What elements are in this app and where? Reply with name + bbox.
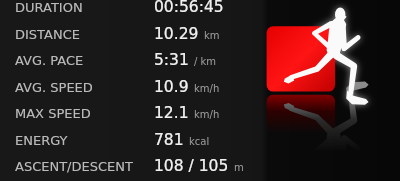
staticText: AVG. SPEED	[15, 80, 93, 95]
staticText: ENERGY	[15, 133, 68, 148]
button[interactable]: AVG. SPEED	[0, 72, 400, 99]
staticText: ASCENT/DESCENT	[15, 159, 133, 174]
button[interactable]: AVG. PACE	[0, 45, 400, 72]
staticText: 781	[154, 131, 184, 149]
other: Running activity logo	[0, 0, 400, 181]
staticText: 108 / 105	[154, 157, 229, 175]
staticText: DISTANCE	[15, 27, 80, 42]
staticText: 5:31	[154, 51, 189, 69]
staticText: km	[204, 30, 220, 42]
staticText: kcal	[189, 136, 210, 148]
staticText: 10.9	[154, 78, 189, 96]
staticText: 00:56:45	[154, 0, 224, 16]
staticText: / km	[194, 56, 217, 68]
staticText: km/h	[194, 83, 220, 95]
button[interactable]: ENERGY	[0, 125, 400, 152]
staticText: AVG. PACE	[15, 53, 84, 68]
button[interactable]: DURATION	[0, 0, 400, 19]
staticText: m	[234, 162, 244, 174]
staticText: DURATION	[15, 0, 83, 15]
staticText: km/h	[194, 109, 220, 121]
button[interactable]: DISTANCE	[0, 19, 400, 46]
staticText: 10.29	[154, 25, 199, 43]
staticText: MAX SPEED	[15, 106, 91, 121]
staticText: 12.1	[154, 104, 189, 122]
button[interactable]: ASCENT/DESCENT	[0, 151, 400, 178]
button[interactable]: MAX SPEED	[0, 98, 400, 125]
